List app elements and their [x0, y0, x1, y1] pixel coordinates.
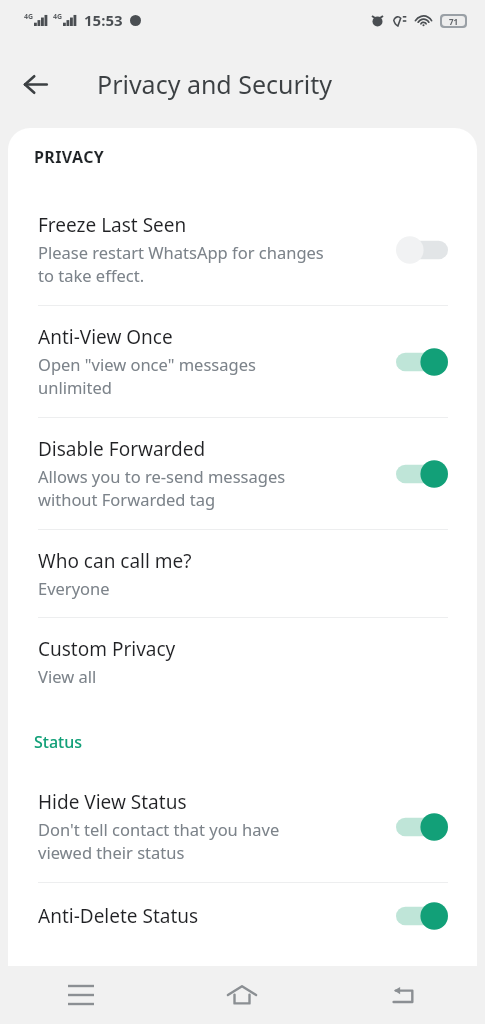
- button[interactable]: Custom Privacy: [8, 618, 477, 705]
- staticText: Allows you to re-send messages without F…: [38, 465, 286, 511]
- button[interactable]: On: [396, 459, 448, 489]
- button[interactable]: Recent apps: [0, 966, 161, 1024]
- staticText: Status: [34, 731, 83, 753]
- staticText: 15:53: [84, 10, 123, 30]
- staticText: Please restart WhatsApp for changes to t…: [38, 241, 324, 287]
- button[interactable]: Who can call me?: [8, 530, 477, 617]
- staticText: Freeze Last Seen: [38, 212, 187, 238]
- staticText: View all: [38, 665, 97, 687]
- button[interactable]: On: [396, 812, 448, 842]
- staticText: Hide View Status: [38, 789, 187, 815]
- button[interactable]: Anti-Delete Status: [8, 883, 477, 949]
- button[interactable]: Anti-View Once: [8, 306, 477, 417]
- staticText: Open "view once" messages unlimited: [38, 353, 256, 399]
- staticText: Custom Privacy: [38, 636, 176, 662]
- staticText: Don't tell contact that you have viewed …: [38, 818, 280, 864]
- button[interactable]: On: [396, 347, 448, 377]
- button[interactable]: Off: [396, 235, 448, 265]
- staticText: Anti-Delete Status: [38, 903, 199, 929]
- staticText: Disable Forwarded: [38, 436, 206, 462]
- staticText: 4G: [53, 12, 63, 22]
- staticText: Privacy and Security: [97, 67, 333, 101]
- staticText: 4G: [24, 12, 34, 22]
- button[interactable]: Back: [323, 966, 485, 1024]
- button[interactable]: Home: [161, 966, 323, 1024]
- button[interactable]: Hide View Status: [8, 771, 477, 882]
- button[interactable]: Disable Forwarded: [8, 418, 477, 529]
- staticText: Who can call me?: [38, 548, 192, 574]
- button[interactable]: On: [396, 901, 448, 931]
- staticText: Everyone: [38, 577, 110, 599]
- button[interactable]: Freeze Last Seen: [8, 194, 477, 305]
- button[interactable]: Back: [10, 59, 60, 109]
- staticText: 71: [449, 16, 459, 26]
- staticText: Anti-View Once: [38, 324, 173, 350]
- staticText: PRIVACY: [34, 146, 105, 168]
